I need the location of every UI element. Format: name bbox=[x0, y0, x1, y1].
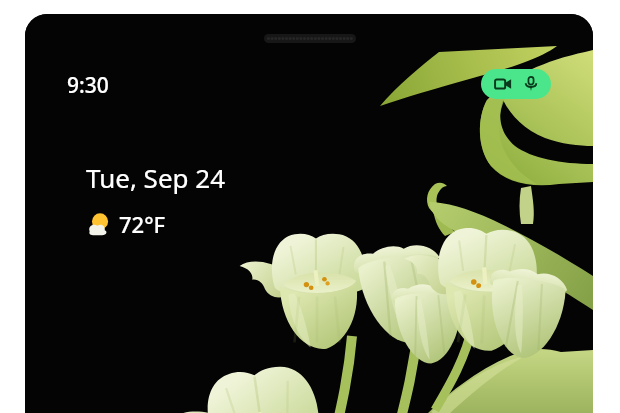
other: Microphone bbox=[523, 76, 539, 92]
staticText: 9:30 bbox=[67, 71, 109, 100]
button[interactable]: Camera bbox=[481, 69, 551, 99]
other: Camera bbox=[494, 75, 512, 93]
staticText: Tue, Sep 24 bbox=[86, 160, 226, 195]
staticText: 72°F bbox=[119, 209, 166, 239]
